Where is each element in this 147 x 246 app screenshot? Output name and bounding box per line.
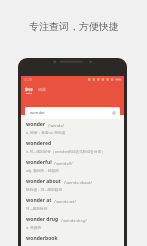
button[interactable]: 词典 bbox=[38, 87, 46, 92]
staticText: 想知道；对…感到疑惑 bbox=[26, 187, 63, 192]
staticText: n. 特效药 bbox=[26, 225, 42, 230]
staticText: adj. 极好的，精彩的 bbox=[26, 168, 60, 173]
staticText: wondered bbox=[26, 140, 52, 147]
staticText: 10:28 bbox=[23, 77, 33, 82]
staticText: 词典 bbox=[38, 87, 46, 92]
staticText: /ˈwʌndə æt/ bbox=[54, 199, 76, 204]
button[interactable]: wonderbook bbox=[21, 235, 124, 246]
button[interactable]: wonder drug bbox=[21, 216, 124, 235]
staticText: 翻译 bbox=[25, 87, 33, 92]
staticText: /ˈwʌndəfl/ bbox=[54, 161, 73, 166]
staticText: v. 对…感到好奇（wonder的过去式和过去分词） bbox=[26, 149, 105, 154]
staticText: wonder bbox=[26, 121, 46, 128]
button[interactable]: wonder at bbox=[21, 197, 124, 216]
button[interactable]: wonder about bbox=[21, 178, 124, 197]
staticText: 专注查词，方便快捷 bbox=[29, 20, 119, 33]
staticText: /ˈwʌndə/ bbox=[48, 123, 64, 128]
staticText: wonder about bbox=[26, 178, 62, 185]
staticText: /ˈwʌndə drʌɡ/ bbox=[61, 218, 87, 223]
staticText: 对…感到惊讶 bbox=[26, 206, 48, 211]
staticText: wonder at bbox=[26, 197, 52, 204]
staticText: wonder bbox=[30, 110, 46, 116]
button[interactable]: wonder bbox=[21, 121, 124, 140]
staticText: wonderful bbox=[26, 159, 52, 166]
button[interactable]: wondered bbox=[21, 140, 124, 159]
staticText: wonder drug bbox=[26, 216, 59, 223]
button[interactable]: Clear search bbox=[112, 111, 116, 115]
button[interactable]: wonderful bbox=[21, 159, 124, 178]
button[interactable]: 翻译 bbox=[25, 87, 33, 94]
staticText: /ˈwʌndə əbaut/ bbox=[64, 180, 92, 185]
staticText: n. 惊奇；奇迹 vi. 想知道 bbox=[26, 130, 66, 135]
staticText: wonderbook bbox=[26, 235, 58, 242]
button[interactable]: wonder bbox=[25, 107, 120, 119]
